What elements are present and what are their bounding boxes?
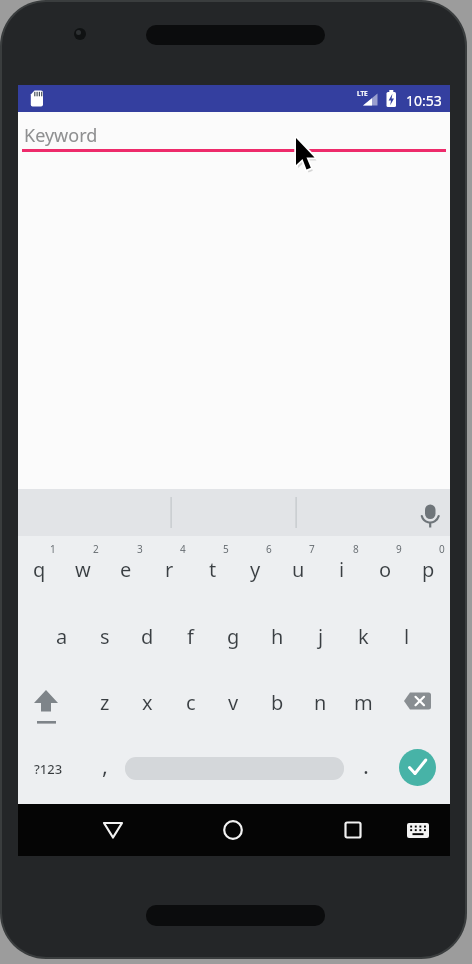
staticText: 8 xyxy=(353,542,359,555)
staticText: . xyxy=(363,750,369,780)
button[interactable]: i xyxy=(320,548,363,590)
button[interactable]: , xyxy=(83,744,126,786)
button[interactable]: o xyxy=(364,548,407,590)
button[interactable]: e xyxy=(104,548,147,590)
button[interactable]: p xyxy=(407,548,450,590)
staticText: o xyxy=(379,556,392,583)
staticText: t xyxy=(209,556,217,583)
staticText: 2 xyxy=(93,542,99,555)
staticText: n xyxy=(314,689,327,716)
staticText: y xyxy=(250,556,261,583)
button[interactable]: f xyxy=(169,615,212,657)
staticText: c xyxy=(186,689,196,716)
button[interactable]: s xyxy=(83,615,126,657)
staticText: h xyxy=(271,623,284,650)
staticText: l xyxy=(404,623,410,650)
button[interactable]: m xyxy=(342,681,385,723)
staticText: m xyxy=(354,689,373,716)
staticText: 7 xyxy=(309,542,315,555)
button[interactable]: d xyxy=(126,615,169,657)
staticText: j xyxy=(318,623,324,650)
staticText: z xyxy=(100,689,110,716)
button[interactable]: z xyxy=(83,681,126,723)
staticText: LTE xyxy=(357,89,368,98)
button[interactable]: q xyxy=(18,548,61,590)
staticText: p xyxy=(422,556,435,583)
staticText: 1 xyxy=(50,542,56,555)
staticText: v xyxy=(228,689,239,716)
staticText: x xyxy=(142,689,153,716)
button[interactable] xyxy=(212,812,254,848)
button[interactable]: v xyxy=(212,681,255,723)
staticText: Keyword xyxy=(24,123,98,147)
button[interactable] xyxy=(414,499,446,531)
button[interactable]: u xyxy=(277,548,320,590)
button[interactable]: n xyxy=(299,681,342,723)
button[interactable]: . xyxy=(344,744,387,786)
staticText: k xyxy=(358,623,369,650)
button[interactable]: g xyxy=(212,615,255,657)
staticText: 10:53 xyxy=(406,91,442,109)
staticText: u xyxy=(292,556,305,583)
staticText: b xyxy=(271,689,284,716)
staticText: f xyxy=(187,623,194,650)
staticText: s xyxy=(100,623,110,650)
button[interactable]: c xyxy=(169,681,212,723)
button[interactable] xyxy=(398,812,438,848)
staticText: g xyxy=(227,623,240,650)
button[interactable] xyxy=(399,749,436,786)
staticText: 6 xyxy=(266,542,272,555)
button[interactable]: x xyxy=(126,681,169,723)
button[interactable] xyxy=(125,757,344,780)
staticText: 4 xyxy=(180,542,186,555)
button[interactable]: a xyxy=(40,615,83,657)
button[interactable] xyxy=(22,681,70,723)
staticText: 5 xyxy=(223,542,229,555)
button[interactable] xyxy=(396,681,442,723)
staticText: 3 xyxy=(137,542,143,555)
staticText: q xyxy=(33,556,46,583)
staticText: , xyxy=(102,750,108,780)
button[interactable]: b xyxy=(256,681,299,723)
staticText: r xyxy=(165,556,174,583)
button[interactable]: Keyword xyxy=(24,123,444,147)
button[interactable]: y xyxy=(234,548,277,590)
button[interactable]: h xyxy=(256,615,299,657)
button[interactable] xyxy=(92,812,134,848)
button[interactable]: ?123 xyxy=(28,756,68,782)
staticText: i xyxy=(339,556,345,583)
staticText: e xyxy=(120,556,132,583)
button[interactable]: r xyxy=(148,548,191,590)
button[interactable]: l xyxy=(385,615,428,657)
button[interactable]: k xyxy=(342,615,385,657)
staticText: w xyxy=(75,556,91,583)
button[interactable] xyxy=(332,812,374,848)
staticText: a xyxy=(56,623,68,650)
staticText: ?123 xyxy=(34,760,63,778)
staticText: 0 xyxy=(439,542,445,555)
staticText: d xyxy=(141,623,154,650)
button[interactable]: j xyxy=(299,615,342,657)
staticText: 9 xyxy=(396,542,402,555)
button[interactable]: w xyxy=(61,548,104,590)
button[interactable]: t xyxy=(191,548,234,590)
